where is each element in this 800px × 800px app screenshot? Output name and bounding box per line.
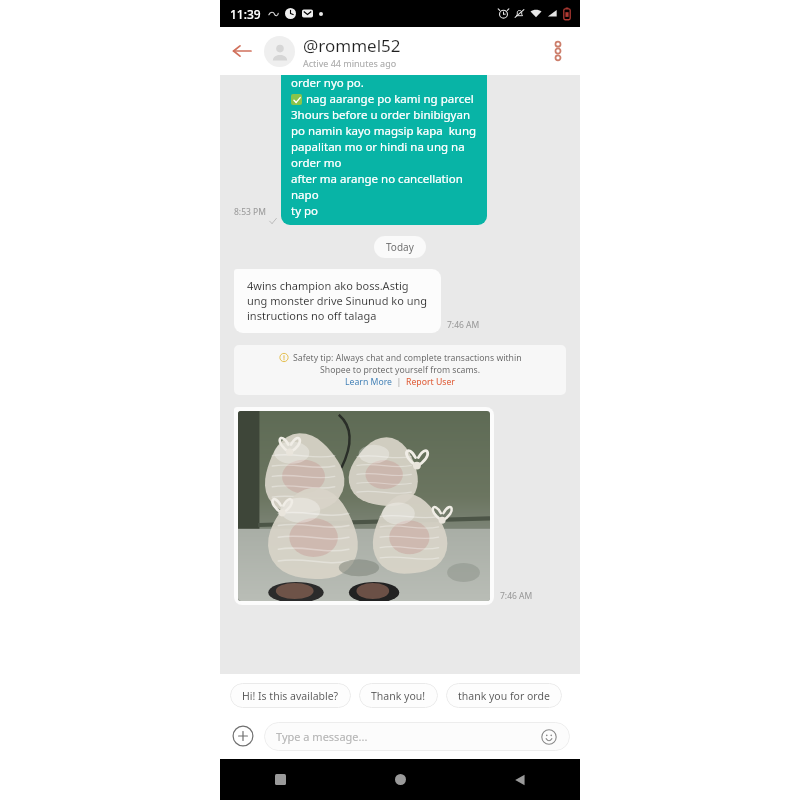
button[interactable]: Add attachment	[230, 723, 256, 749]
staticText: ty po	[291, 203, 319, 219]
staticText: 8:53 PM	[234, 206, 266, 218]
button[interactable]: Learn More	[345, 376, 392, 388]
button[interactable]: Back	[460, 759, 580, 800]
button[interactable]: Recent apps	[220, 759, 340, 800]
button[interactable]: Back	[220, 29, 264, 73]
staticText: 4wins champion ako boss.Astig	[247, 278, 409, 293]
button[interactable]: Thank you!	[359, 683, 438, 708]
staticText: after ma arange no cancellation	[291, 171, 463, 187]
staticText: Report User	[406, 376, 455, 388]
staticText: Learn More	[345, 376, 392, 388]
staticText: thank you for orde	[458, 689, 550, 703]
staticText: Thank you!	[371, 689, 426, 703]
button[interactable]: Photo message	[234, 407, 494, 605]
staticText: 7:46 AM	[500, 590, 533, 602]
staticText: order mo	[291, 155, 342, 171]
staticText: Hi! Is this available?	[242, 689, 339, 703]
button[interactable]: Type a message...	[264, 722, 570, 751]
staticText: napo	[291, 187, 319, 203]
staticText: Shopee to protect yourself from scams.	[320, 364, 481, 376]
staticText: instructions no off talaga	[247, 308, 377, 323]
staticText: Active 44 minutes ago	[303, 57, 397, 69]
button[interactable]: 4wins champion ako boss.Astig	[234, 269, 441, 333]
staticText: @rommel52	[303, 34, 401, 57]
button[interactable]: More options	[536, 29, 580, 73]
staticText: Type a message...	[276, 729, 540, 744]
button[interactable]: Report User	[406, 376, 455, 388]
button[interactable]: Profile photo	[264, 36, 295, 67]
button[interactable]: order nyo po.	[281, 75, 487, 225]
staticText: order nyo po.	[291, 75, 364, 91]
staticText: ung monster drive Sinunud ko ung	[247, 293, 428, 308]
staticText: 3hours before u order binibigyan	[291, 107, 470, 123]
button[interactable]: Home	[340, 759, 460, 800]
staticText: 11:39	[230, 6, 261, 22]
staticText: Today	[386, 240, 414, 254]
staticText: Safety tip: Always chat and complete tra…	[293, 352, 522, 364]
staticText: |	[392, 376, 406, 388]
button[interactable]: @rommel52	[303, 34, 536, 69]
staticText: po namin kayo magsip kapa kung	[291, 123, 477, 139]
staticText: 7:46 AM	[447, 319, 480, 331]
staticText: nag aarange po kami ng parcel	[306, 91, 474, 107]
button[interactable]: thank you for orde	[446, 683, 562, 708]
staticText: papalitan mo or hindi na ung na	[291, 139, 465, 155]
button[interactable]: Emoji	[540, 728, 558, 746]
button[interactable]: Hi! Is this available?	[230, 683, 351, 708]
